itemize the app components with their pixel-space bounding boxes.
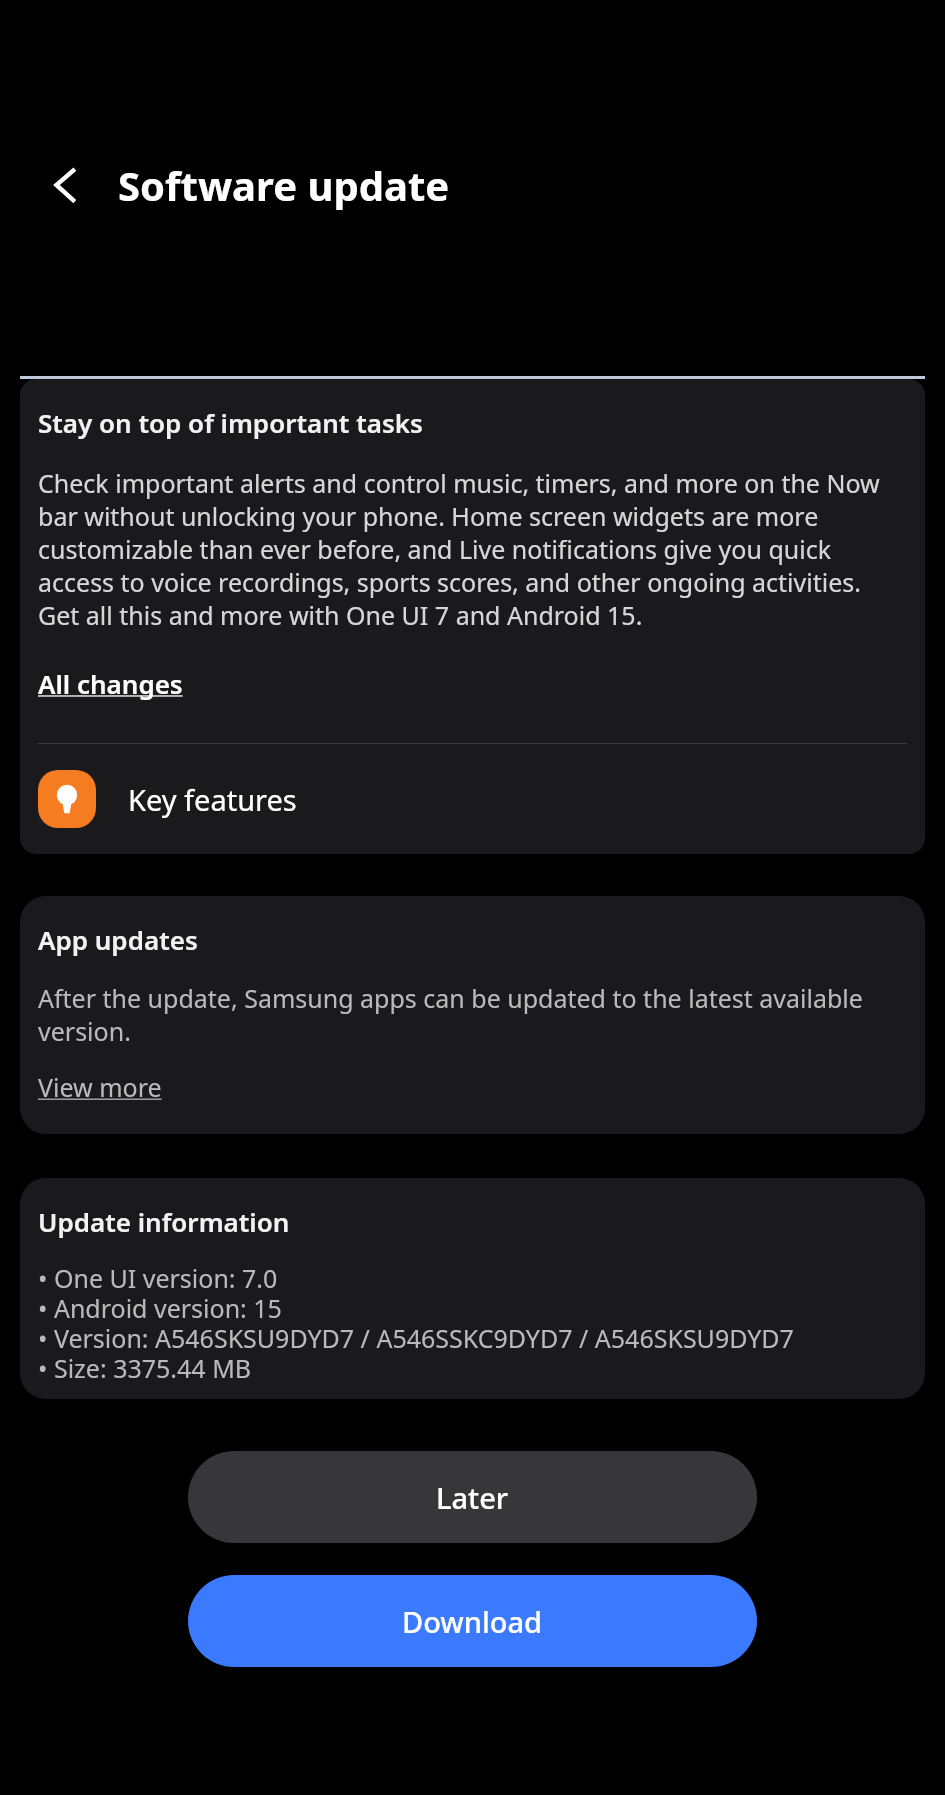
staticText: Later: [436, 1478, 509, 1517]
staticText: After the update, Samsung apps can be up…: [38, 981, 863, 1048]
staticText: Update information: [38, 1204, 290, 1239]
button[interactable]: Later: [188, 1451, 757, 1543]
button[interactable]: Key features: [38, 744, 907, 854]
staticText: Check important alerts and control music…: [38, 466, 907, 632]
staticText: Download: [402, 1602, 543, 1641]
staticText: All changes: [38, 666, 183, 701]
staticText: Key features: [128, 780, 297, 819]
button[interactable]: Download: [188, 1575, 757, 1667]
button[interactable]: All changes: [38, 666, 183, 701]
staticText: • One UI version: 7.0 • Android version:…: [38, 1261, 794, 1385]
button[interactable]: View more: [38, 1070, 162, 1104]
button[interactable]: Back: [40, 159, 92, 211]
staticText: Software update: [118, 158, 450, 212]
staticText: Stay on top of important tasks: [38, 405, 423, 440]
staticText: View more: [38, 1070, 162, 1104]
staticText: App updates: [38, 922, 198, 957]
